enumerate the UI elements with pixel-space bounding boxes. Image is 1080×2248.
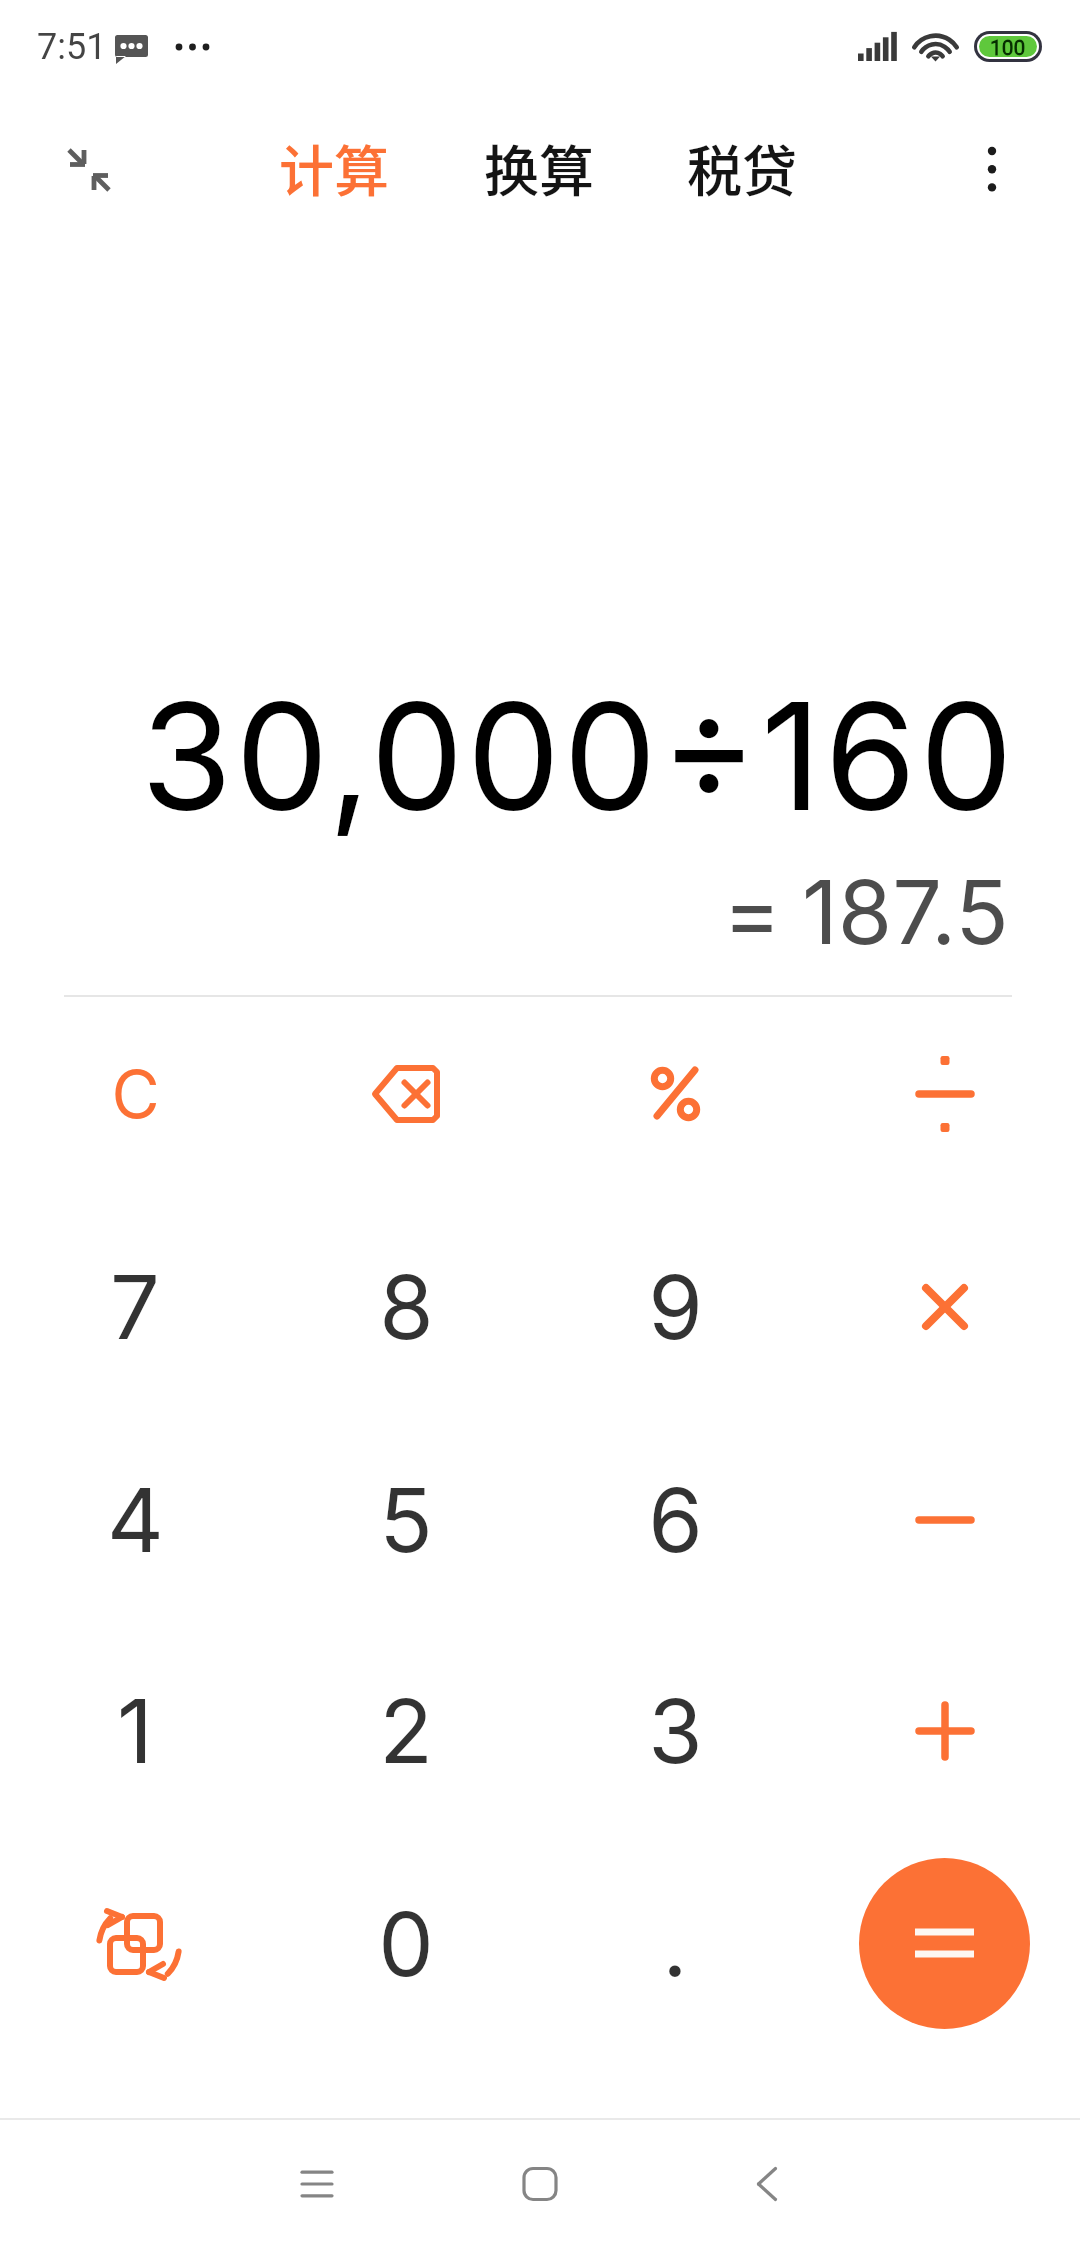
staticText: 6 (648, 1467, 703, 1573)
button[interactable]: Convert (5, 1844, 265, 2044)
staticText: 4 (107, 1467, 164, 1573)
button[interactable]: 7 (5, 1207, 265, 1407)
button[interactable]: More options (947, 123, 1037, 213)
button[interactable]: Home (445, 2120, 635, 2248)
button[interactable]: 计算 (260, 119, 408, 215)
button[interactable]: 3 (545, 1631, 805, 1831)
staticText: . (662, 1891, 688, 1997)
button[interactable]: 5 (276, 1420, 536, 1620)
staticText: 30,000÷160 (140, 667, 1016, 846)
staticText: 3 (648, 1678, 703, 1784)
staticText: 8 (379, 1254, 434, 1360)
staticText: 计算 (279, 127, 390, 207)
button[interactable]: Collapse (46, 127, 130, 211)
staticText: 1 (117, 1678, 153, 1784)
button[interactable]: 0 (276, 1844, 536, 2044)
button[interactable]: C (5, 994, 265, 1194)
staticText: 7:51 (37, 26, 107, 68)
button[interactable]: 9 (545, 1207, 805, 1407)
button[interactable]: 4 (5, 1420, 265, 1620)
button[interactable]: 2 (276, 1631, 536, 1831)
staticText: C (111, 1054, 160, 1134)
button[interactable]: Backspace (276, 994, 536, 1194)
button[interactable]: Equals (859, 1858, 1030, 2029)
button[interactable]: Percent (545, 994, 805, 1194)
button[interactable]: Divide (815, 994, 1075, 1194)
button[interactable]: 8 (276, 1207, 536, 1407)
button[interactable]: Multiply (815, 1207, 1075, 1407)
staticText: 2 (379, 1678, 433, 1784)
button[interactable]: 换算 (465, 119, 613, 215)
button[interactable]: Minus (815, 1420, 1075, 1620)
button[interactable]: Recents (222, 2120, 412, 2248)
button[interactable]: Back (672, 2120, 862, 2248)
button[interactable]: Plus (815, 1631, 1075, 1831)
staticText: 9 (648, 1254, 703, 1360)
button[interactable]: 6 (545, 1420, 805, 1620)
staticText: 5 (379, 1467, 433, 1573)
button[interactable]: . (545, 1844, 805, 2044)
staticText: 换算 (484, 127, 595, 207)
staticText: = (723, 859, 782, 965)
staticText: 0 (378, 1891, 434, 1997)
button[interactable]: 1 (5, 1631, 265, 1831)
staticText: 7 (110, 1254, 160, 1360)
button[interactable]: 税贷 (668, 119, 816, 215)
staticText: 187.5 (802, 859, 1009, 965)
staticText: 税贷 (687, 127, 798, 207)
staticText: 100 (990, 36, 1026, 57)
